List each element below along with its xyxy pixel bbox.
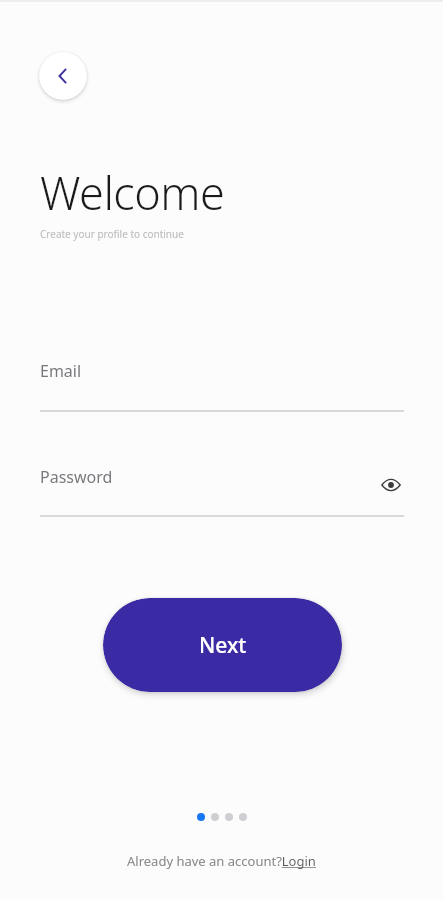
button[interactable]: Already have an account?Login — [127, 852, 316, 870]
button[interactable]: Password — [40, 466, 404, 517]
button[interactable]: Email — [40, 360, 404, 412]
staticText: Create your profile to continue — [40, 227, 184, 241]
staticText: Already have an account?Login — [127, 852, 316, 870]
staticText: Password — [40, 466, 113, 488]
button[interactable]: Show password — [378, 472, 404, 498]
button[interactable]: Next — [103, 598, 342, 692]
staticText: Next — [199, 631, 247, 660]
staticText: Email — [40, 360, 82, 382]
button[interactable]: Back — [39, 52, 87, 100]
staticText: Welcome — [40, 162, 225, 223]
